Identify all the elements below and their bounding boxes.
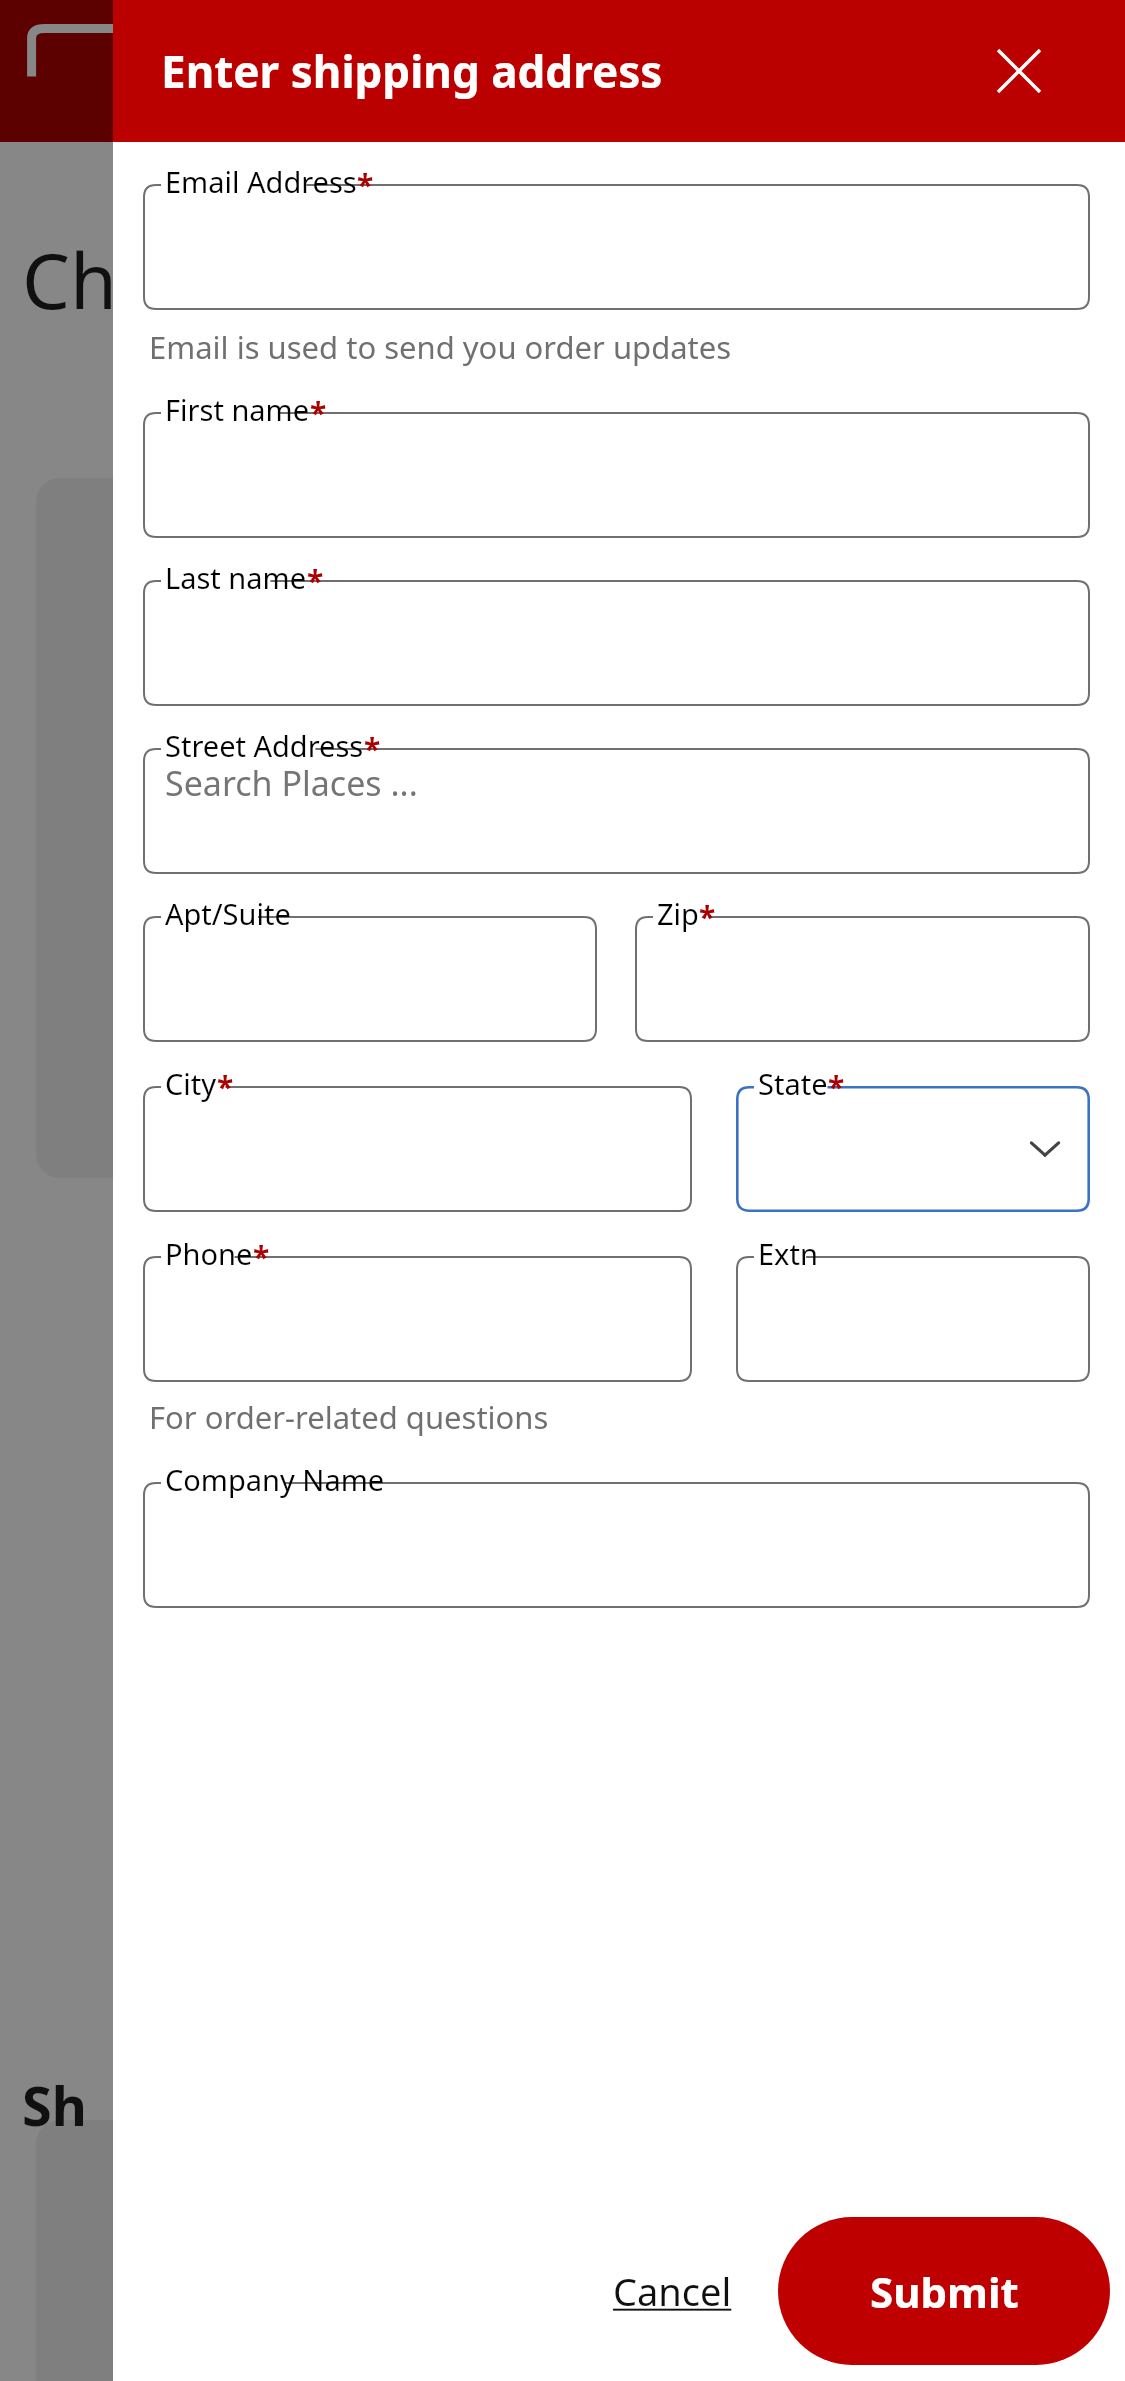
button[interactable]: Cancel [589,2245,756,2337]
staticText: * [364,728,381,769]
staticText: Cancel [613,2265,732,2317]
staticText: Email Address [165,162,357,201]
staticText: For order-related questions [149,1396,549,1438]
button[interactable]: Submit [778,2217,1110,2365]
staticText: * [828,1066,845,1107]
staticText: * [310,392,327,433]
staticText: Extn [758,1234,818,1273]
staticText: First name [165,390,310,429]
staticText: Ch [22,228,117,332]
staticText: Submit [870,2263,1019,2320]
staticText: Zip [657,894,699,933]
staticText: * [253,1236,270,1277]
staticText: * [307,560,324,601]
staticText: Company Name [165,1460,385,1499]
staticText: City [165,1064,217,1103]
staticText: Sh [22,2068,87,2142]
staticText: * [217,1066,234,1107]
staticText: Last name [165,558,307,597]
staticText: * [357,164,374,205]
staticText: State [758,1064,828,1103]
staticText: Enter shipping address [161,41,663,101]
staticText: Phone [165,1234,253,1273]
staticText: Street Address [165,726,364,765]
button[interactable]: Close [979,31,1059,111]
staticText: Apt/Suite [165,894,291,933]
staticText: Search Places ... [165,760,418,806]
staticText: Email is used to send you order updates [149,326,732,368]
staticText: * [699,896,716,937]
